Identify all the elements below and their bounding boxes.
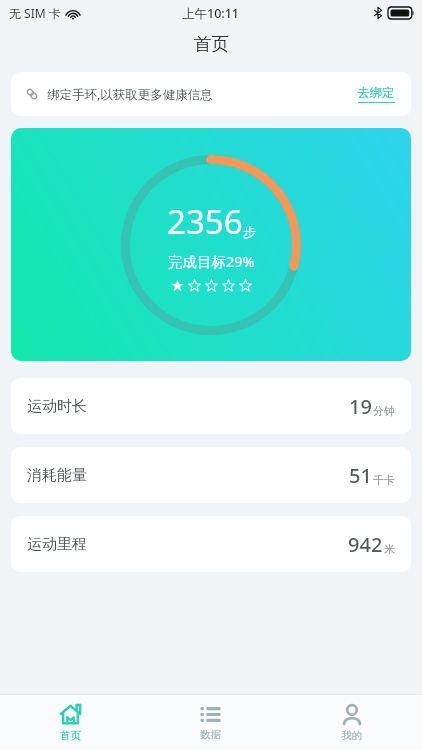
- staticText: 无 SIM 卡: [9, 5, 61, 21]
- button[interactable]: 2356: [11, 128, 411, 361]
- button[interactable]: 数据: [140, 695, 281, 750]
- staticText: 我的: [341, 729, 362, 742]
- button[interactable]: 我的: [281, 695, 422, 750]
- staticText: 19: [349, 393, 372, 420]
- button[interactable]: 消耗能量: [11, 447, 411, 503]
- button[interactable]: 运动时长: [11, 378, 411, 434]
- staticText: 2356: [167, 199, 243, 244]
- button[interactable]: 绑定手环,以获取更多健康信息: [11, 72, 411, 116]
- staticText: 上午10:11: [182, 5, 240, 22]
- staticText: 51: [349, 462, 372, 489]
- staticText: 942: [348, 531, 383, 558]
- staticText: 米: [384, 542, 395, 556]
- staticText: 运动里程: [27, 535, 87, 554]
- staticText: 去绑定: [357, 85, 395, 101]
- button[interactable]: 去绑定: [357, 85, 395, 103]
- staticText: 消耗能量: [27, 466, 87, 485]
- button[interactable]: 运动里程: [11, 516, 411, 572]
- staticText: 首页: [194, 33, 229, 55]
- staticText: 完成目标29%: [168, 251, 255, 271]
- staticText: 首页: [60, 729, 81, 742]
- staticText: 绑定手环,以获取更多健康信息: [47, 86, 213, 103]
- staticText: 步: [243, 224, 256, 240]
- staticText: 运动时长: [27, 397, 87, 416]
- staticText: 数据: [200, 728, 221, 741]
- staticText: 分钟: [373, 404, 395, 418]
- button[interactable]: 首页: [0, 695, 140, 750]
- staticText: 千卡: [373, 473, 395, 487]
